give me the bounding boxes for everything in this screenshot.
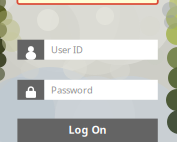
staticText: Log On	[69, 122, 107, 137]
staticText: Password	[51, 84, 93, 96]
staticText: User ID	[51, 43, 83, 56]
button[interactable]: Log On	[17, 119, 158, 142]
